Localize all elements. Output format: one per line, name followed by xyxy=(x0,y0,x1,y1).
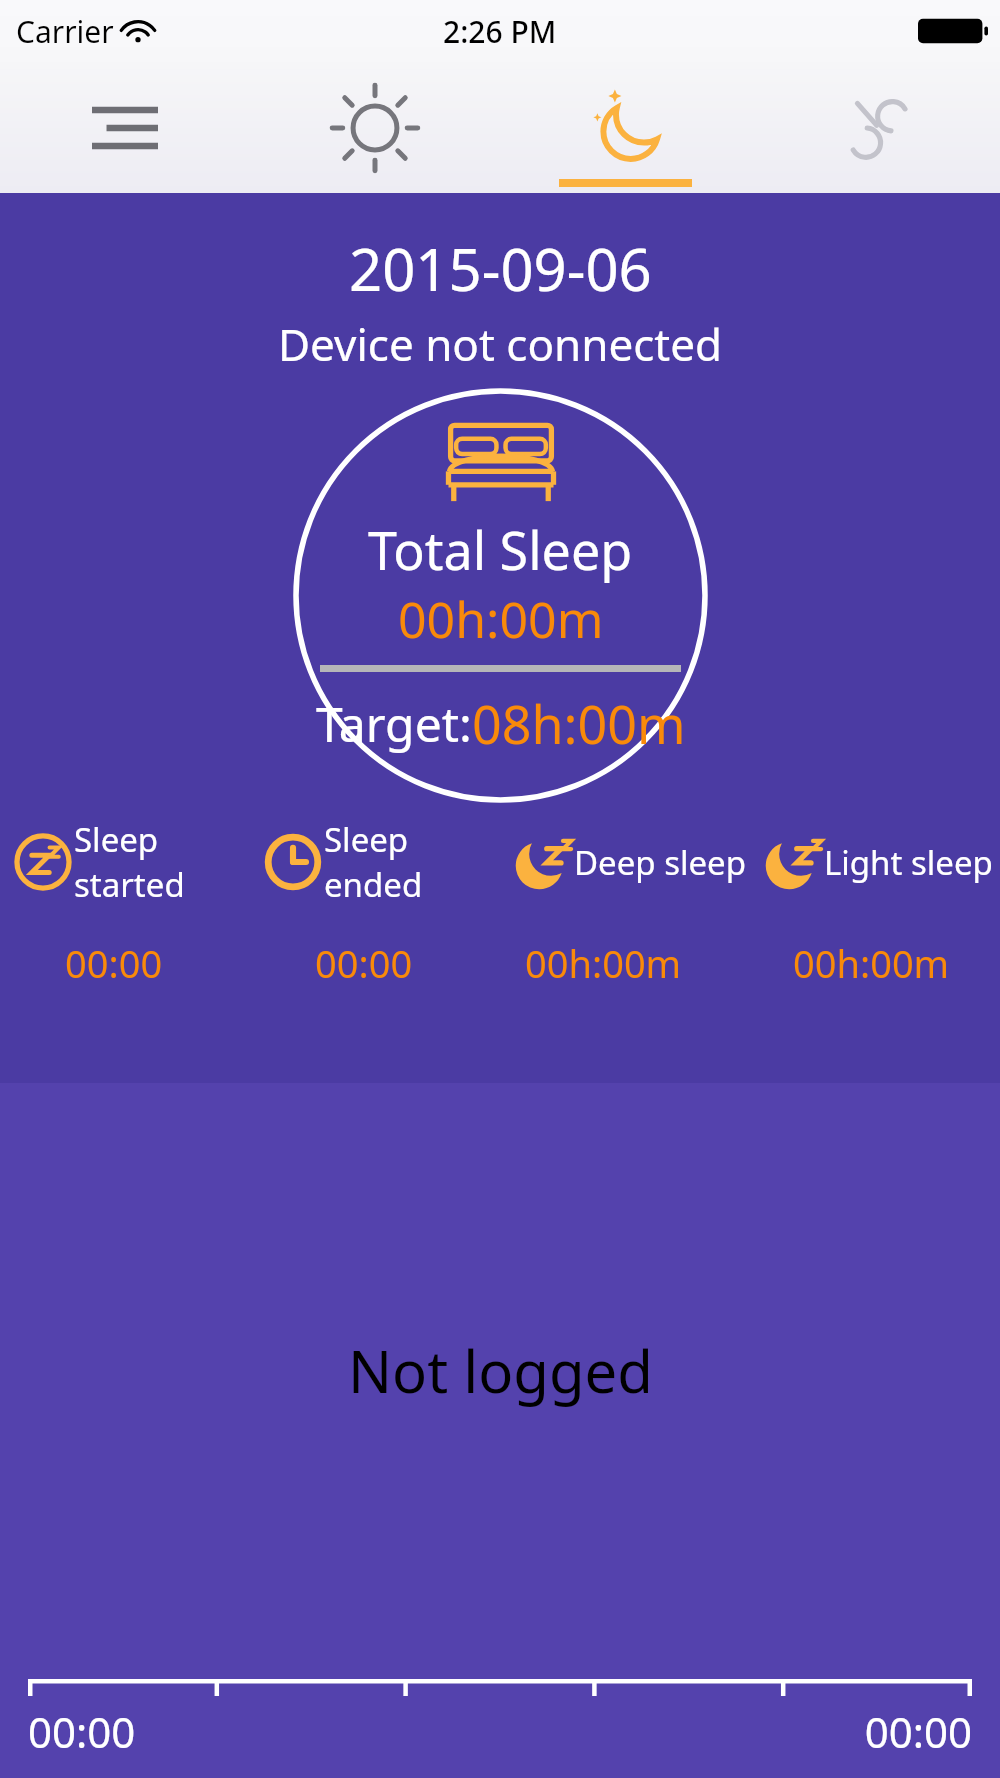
staticText: Carrier xyxy=(16,11,114,52)
button[interactable]: Sleep ended xyxy=(250,817,500,907)
button[interactable]: Sleep started xyxy=(0,817,250,907)
button[interactable]: Night xyxy=(500,62,750,193)
button[interactable]: Day xyxy=(250,62,500,193)
button[interactable]: Device not connected xyxy=(750,62,1000,193)
staticText: Total Sleep xyxy=(368,514,633,585)
staticText: 00h:00m xyxy=(398,585,604,653)
staticText: 00h:00m xyxy=(793,937,950,989)
staticText: 2:26 PM xyxy=(443,11,557,52)
staticText: Target: xyxy=(316,691,472,756)
button[interactable]: Deep sleep xyxy=(500,831,750,893)
staticText: 08h:00m xyxy=(472,688,686,759)
staticText: Deep sleep xyxy=(574,840,747,885)
staticText: 00:00 xyxy=(28,1703,136,1760)
staticText: Light sleep xyxy=(824,840,993,885)
staticText: Not logged xyxy=(348,1331,653,1410)
staticText: 00:00 xyxy=(315,937,413,989)
staticText: 2015-09-06 xyxy=(349,229,652,308)
staticText: 00:00 xyxy=(864,1703,972,1760)
button[interactable]: Light sleep xyxy=(750,831,1000,893)
staticText: Device not connected xyxy=(278,314,723,374)
staticText: Sleep started xyxy=(74,817,250,907)
staticText: 00h:00m xyxy=(525,937,682,989)
button[interactable]: Menu xyxy=(0,62,250,193)
staticText: Sleep ended xyxy=(324,817,500,907)
staticText: 00:00 xyxy=(65,937,163,989)
